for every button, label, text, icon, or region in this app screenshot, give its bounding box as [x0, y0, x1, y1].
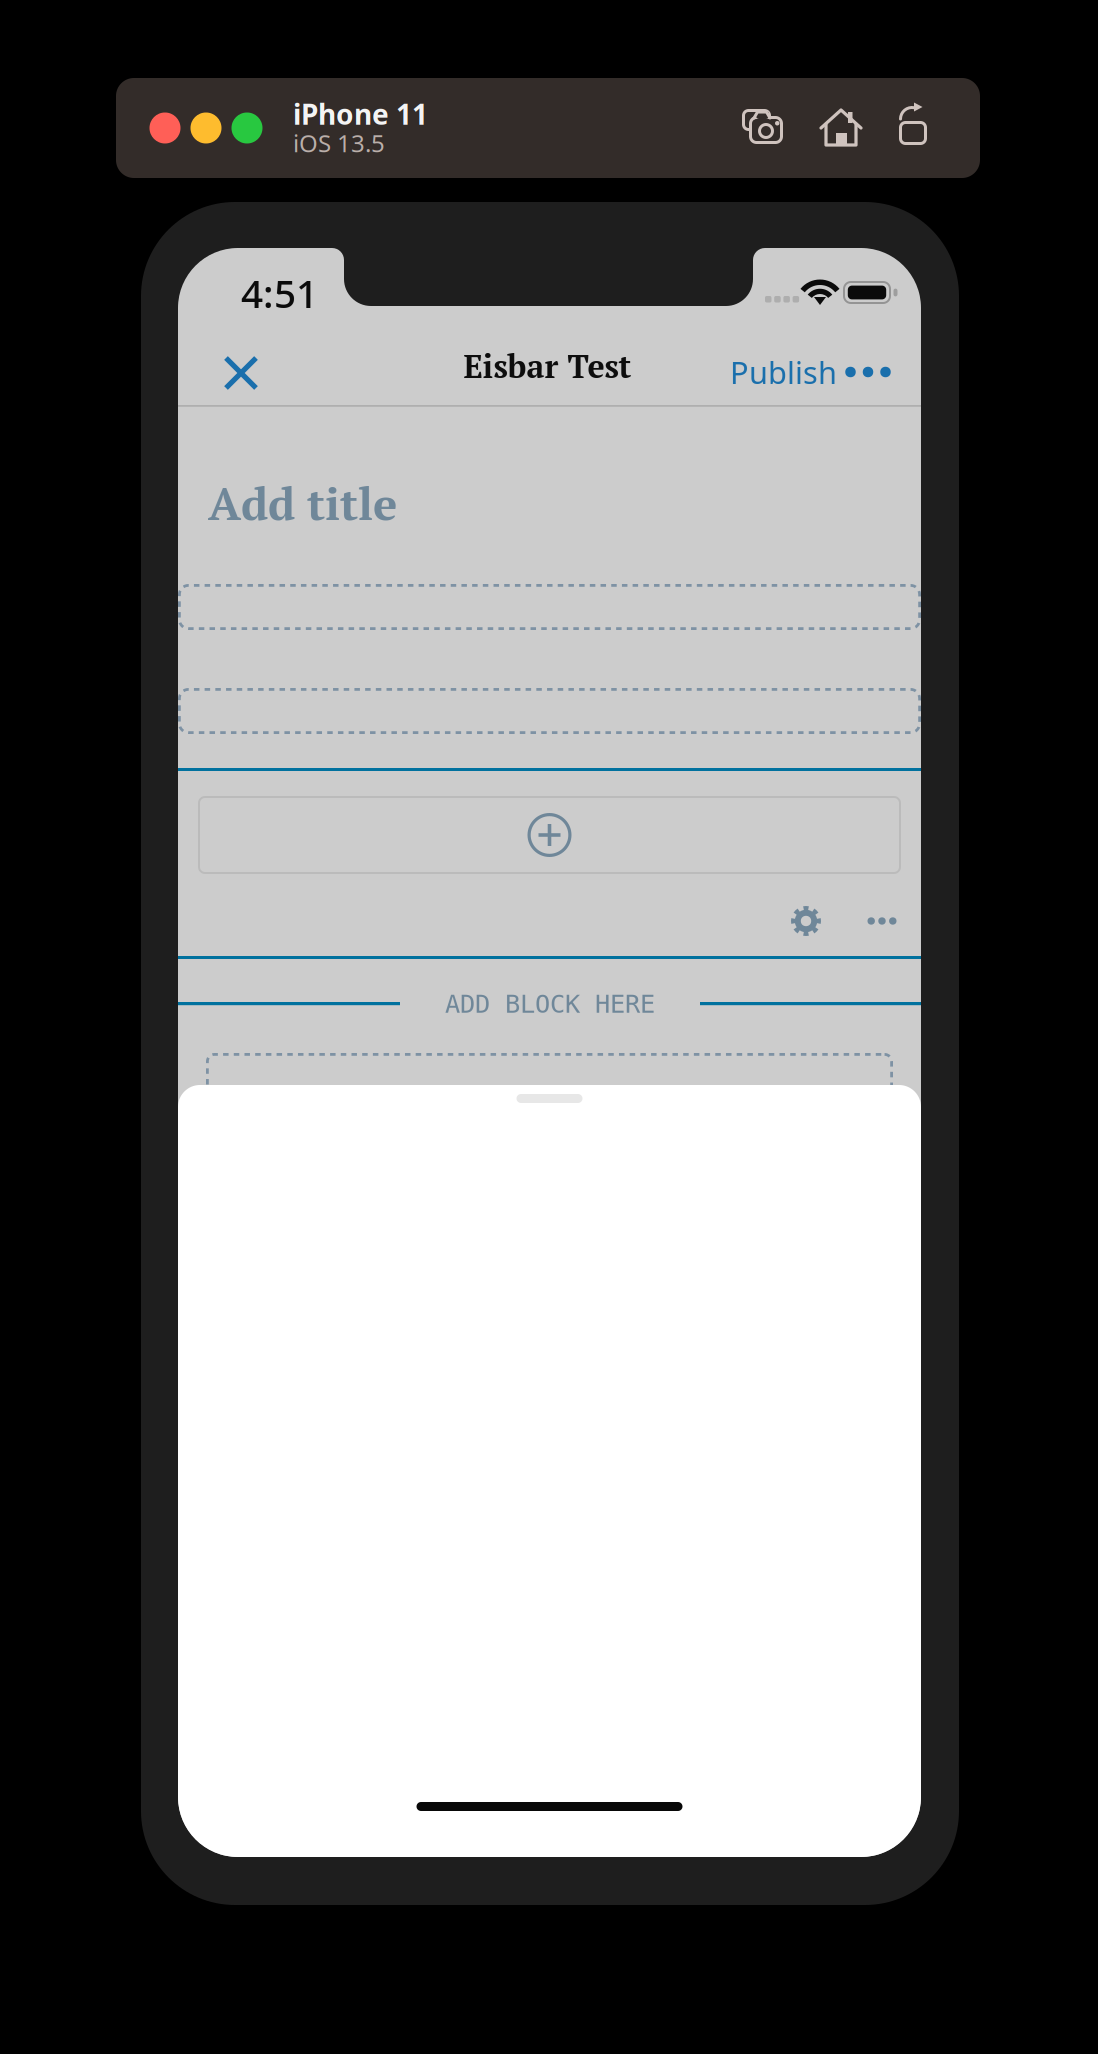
button[interactable]: Screenshot [0, 0, 1098, 2054]
staticText: Publish [730, 352, 837, 392]
button[interactable]: Home [0, 0, 1098, 2054]
button[interactable]: Close [178, 248, 921, 1857]
button[interactable]: Block settings [178, 248, 921, 1857]
button[interactable]: More options [178, 248, 921, 1857]
staticText: iPhone 11 [293, 95, 428, 133]
staticText: ADD BLOCK HERE [445, 989, 655, 1019]
button[interactable]: More [178, 248, 921, 1857]
button[interactable]: Publish [178, 248, 921, 1857]
staticText: Add title [208, 473, 397, 533]
button[interactable]: Add block [527, 813, 571, 857]
staticText: 4:51 [241, 267, 318, 319]
staticText: iOS 13.5 [293, 127, 385, 159]
staticText: Eisbar Test [463, 345, 631, 387]
button[interactable]: Rotate [0, 0, 1098, 2054]
